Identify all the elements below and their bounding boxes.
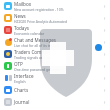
staticText: Traders Community bbox=[14, 49, 57, 55]
staticText: Trading signals and ideas bbox=[14, 55, 55, 60]
button[interactable]: Mailbox bbox=[0, 0, 110, 12]
button[interactable]: Sync bbox=[95, 44, 102, 51]
staticText: HZ2020 Price Analytic Automated bbox=[14, 19, 68, 24]
other: Open bbox=[102, 28, 107, 33]
button[interactable]: Interface bbox=[0, 72, 110, 84]
other: Open bbox=[102, 40, 107, 45]
staticText: Mailbox bbox=[14, 1, 32, 7]
staticText: Charts bbox=[14, 87, 29, 93]
other: Open bbox=[102, 88, 107, 93]
staticText: Chat and Messages bbox=[14, 37, 56, 43]
button[interactable]: News bbox=[0, 12, 110, 24]
button[interactable]: Traders Community bbox=[0, 48, 110, 60]
staticText: English bbox=[14, 79, 26, 84]
staticText: Live chat for all of its trading bbox=[14, 43, 60, 48]
staticText: OTP bbox=[14, 61, 23, 67]
staticText: Interface bbox=[14, 73, 34, 79]
staticText: News bbox=[14, 13, 26, 19]
other: Open bbox=[102, 64, 107, 69]
button[interactable]: Chat and Messages bbox=[0, 36, 110, 48]
staticText: New account registration - 10% bbox=[14, 7, 64, 12]
other: Open bbox=[102, 76, 107, 81]
button[interactable]: Charts bbox=[0, 84, 110, 96]
other: Open bbox=[102, 52, 107, 57]
other: Open bbox=[102, 100, 107, 105]
button[interactable]: Todays bbox=[0, 24, 110, 36]
staticText: Economic calendar bbox=[14, 31, 45, 36]
staticText: Todays bbox=[14, 25, 29, 31]
button[interactable]: OTP bbox=[0, 60, 110, 72]
other: Open bbox=[102, 4, 107, 9]
staticText: Journal bbox=[14, 99, 30, 105]
button[interactable]: Journal bbox=[0, 96, 110, 108]
staticText: One-time password generator bbox=[14, 67, 62, 72]
other: Open bbox=[102, 16, 107, 21]
